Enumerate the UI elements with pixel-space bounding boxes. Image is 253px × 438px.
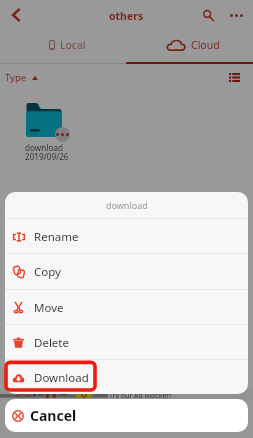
button[interactable]: Download — [5, 360, 248, 394]
button[interactable]: Back — [1, 0, 31, 30]
button[interactable]: Delete — [5, 325, 248, 360]
staticText: Cloud — [191, 38, 220, 52]
staticText: Local — [60, 38, 86, 52]
button[interactable]: Folder options — [55, 127, 70, 142]
button[interactable]: Cloud — [166, 38, 220, 52]
button[interactable]: Move — [5, 290, 248, 325]
button[interactable]: Cancel — [5, 399, 248, 432]
staticText: Rename — [34, 229, 79, 245]
staticText: Delete — [34, 335, 69, 351]
staticText: Type — [5, 71, 27, 84]
button[interactable]: More options — [225, 4, 247, 26]
staticText: Try our Ad Blocker! — [109, 391, 172, 401]
staticText: Download — [34, 370, 89, 386]
staticText: download — [106, 199, 148, 211]
staticText: Copy — [34, 264, 61, 280]
staticText: download — [25, 142, 64, 153]
staticText: others — [109, 9, 144, 23]
staticText: Cancel — [30, 406, 77, 425]
button[interactable]: Copy — [5, 254, 248, 289]
staticText: 2019/09/26 — [25, 151, 69, 162]
button[interactable]: Type — [1, 67, 42, 88]
button[interactable]: Local — [49, 38, 86, 52]
staticText: Move — [34, 300, 64, 316]
button[interactable]: Switch to list view — [225, 68, 243, 86]
button[interactable]: Search — [197, 4, 219, 26]
button[interactable]: Rename — [5, 219, 248, 254]
